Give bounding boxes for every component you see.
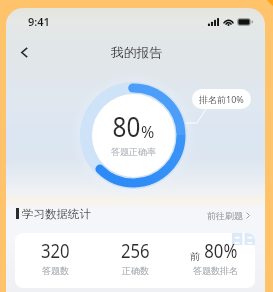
staticText: 9:41 [28, 14, 50, 29]
staticText: 前往刷题 [207, 210, 243, 221]
staticText: 前 [190, 250, 200, 263]
staticText: 正确数 [122, 265, 149, 276]
staticText: 答题数排名 [193, 265, 238, 276]
button[interactable]: 前 [175, 233, 255, 288]
staticText: 答题正确率 [111, 146, 156, 157]
staticText: % [141, 121, 155, 143]
staticText: 80% [204, 238, 238, 264]
staticText: 256 [121, 238, 150, 264]
button[interactable]: 排名前10% [192, 89, 251, 109]
button[interactable]: Back [11, 39, 37, 65]
staticText: 排名前10% [199, 93, 244, 105]
staticText: 80 [113, 108, 140, 145]
staticText: 学习数据统计 [22, 207, 91, 221]
button[interactable]: 256 [95, 233, 175, 288]
button[interactable]: 前往刷题 [207, 210, 250, 221]
staticText: 320 [41, 238, 70, 264]
button[interactable]: 320 [15, 233, 95, 288]
staticText: 答题数 [42, 265, 69, 276]
staticText: 我的报告 [111, 45, 163, 61]
